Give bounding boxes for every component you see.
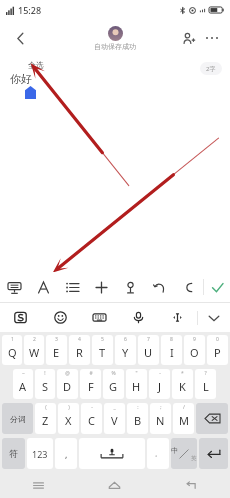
button[interactable]: 句号 [147, 438, 169, 469]
button[interactable]: ~ [13, 369, 33, 399]
button[interactable]: ) [58, 403, 79, 434]
staticText: 。 [155, 450, 161, 458]
button[interactable]: : [127, 403, 148, 434]
button[interactable]: # [80, 369, 101, 399]
staticText: 全选 [28, 60, 44, 70]
button[interactable]: 回车 [199, 438, 228, 469]
button[interactable]: 逗号 [55, 438, 77, 469]
button[interactable]: - [149, 369, 170, 399]
button[interactable]: ( [35, 403, 56, 434]
staticText: : [137, 404, 139, 411]
button[interactable]: 删除 [196, 403, 228, 434]
staticText: I [170, 345, 174, 360]
button[interactable]: 全选 [22, 58, 50, 72]
staticText: ? [204, 370, 207, 377]
button[interactable]: 6 [115, 335, 136, 365]
staticText: @ [65, 370, 70, 377]
staticText: " [135, 370, 138, 377]
staticText: ; [160, 404, 162, 411]
button[interactable]: 完成 [204, 272, 230, 302]
button[interactable]: 5 [92, 335, 113, 365]
button[interactable]: 123 [27, 438, 53, 469]
staticText: Y [122, 345, 129, 360]
staticText: ! [44, 370, 46, 377]
button[interactable]: 光标移动 [158, 303, 197, 332]
button[interactable]: ; [150, 403, 171, 434]
staticText: ) [68, 404, 70, 411]
button[interactable]: 收起键盘 [198, 303, 230, 332]
button[interactable]: 撤销 [145, 272, 174, 302]
button[interactable]: * [172, 369, 193, 399]
staticText: K [179, 379, 186, 394]
button[interactable]: @ [57, 369, 78, 399]
staticText: 自动保存成功 [94, 42, 136, 51]
button[interactable]: 7 [138, 335, 159, 365]
staticText: ( [45, 404, 47, 411]
staticText: - [91, 404, 93, 411]
button[interactable]: 1 [2, 335, 22, 365]
staticText: 4 [78, 336, 81, 343]
button[interactable]: _ [104, 403, 125, 434]
staticText: L [203, 379, 209, 394]
button[interactable]: 0 [207, 335, 228, 365]
button[interactable]: 符号 [2, 438, 25, 469]
staticText: 中 [171, 446, 178, 455]
staticText: 2字 [206, 65, 216, 73]
button[interactable]: - [81, 403, 102, 434]
staticText: S [42, 379, 49, 394]
button[interactable]: 表情 [40, 303, 80, 332]
staticText: 你好 [10, 72, 32, 86]
button[interactable]: 中英切换 [171, 438, 197, 469]
staticText: W [29, 345, 40, 360]
staticText: 15:28 [18, 4, 42, 16]
staticText: / [183, 404, 185, 411]
staticText: F [88, 379, 94, 394]
button[interactable]: 3 [46, 335, 67, 365]
button[interactable]: 返回 [153, 472, 230, 498]
button[interactable]: / [173, 403, 194, 434]
button[interactable]: 空格 [79, 438, 145, 469]
button[interactable]: ? [195, 369, 216, 399]
button[interactable]: 更多 [200, 26, 224, 50]
staticText: O [190, 345, 199, 360]
staticText: M [179, 413, 189, 428]
staticText: 1 [11, 336, 14, 343]
staticText: R [76, 345, 83, 360]
button[interactable]: " [126, 369, 147, 399]
button[interactable]: 列表 [58, 272, 87, 302]
button[interactable]: 8 [161, 335, 182, 365]
button[interactable]: 最近任务 [0, 472, 76, 498]
button[interactable]: 键盘 [80, 303, 119, 332]
button[interactable]: 标记 [116, 272, 145, 302]
staticText: T [99, 345, 106, 360]
button[interactable]: ! [35, 369, 55, 399]
button[interactable]: 4 [69, 335, 90, 365]
button[interactable]: 键盘 [0, 272, 29, 302]
button[interactable]: 2字 [200, 62, 222, 75]
staticText: 分词 [10, 414, 26, 424]
button[interactable]: 字体 [29, 272, 58, 302]
staticText: J [158, 379, 162, 394]
button[interactable]: 重做 [174, 272, 203, 302]
staticText: 6 [124, 336, 127, 343]
button[interactable]: 2 [24, 335, 44, 365]
button[interactable]: 9 [184, 335, 205, 365]
button[interactable]: 分词 [2, 403, 33, 434]
staticText: # [89, 370, 93, 377]
staticText: A [19, 379, 27, 394]
button[interactable]: % [103, 369, 124, 399]
button[interactable]: 添加成员 [176, 26, 200, 50]
staticText: X [65, 413, 72, 428]
staticText: U [144, 345, 153, 360]
button[interactable]: 主页 [76, 472, 153, 498]
staticText: 2 [33, 336, 36, 343]
button[interactable]: 搜狗输入法 [0, 303, 40, 332]
staticText: B [134, 413, 142, 428]
button[interactable]: 语音 [119, 303, 158, 332]
button[interactable]: 插入 [87, 272, 116, 302]
staticText: * [181, 370, 184, 377]
staticText: C [88, 413, 95, 428]
staticText: P [214, 345, 221, 360]
staticText: N [156, 413, 165, 428]
button[interactable]: 返回 [8, 26, 32, 50]
